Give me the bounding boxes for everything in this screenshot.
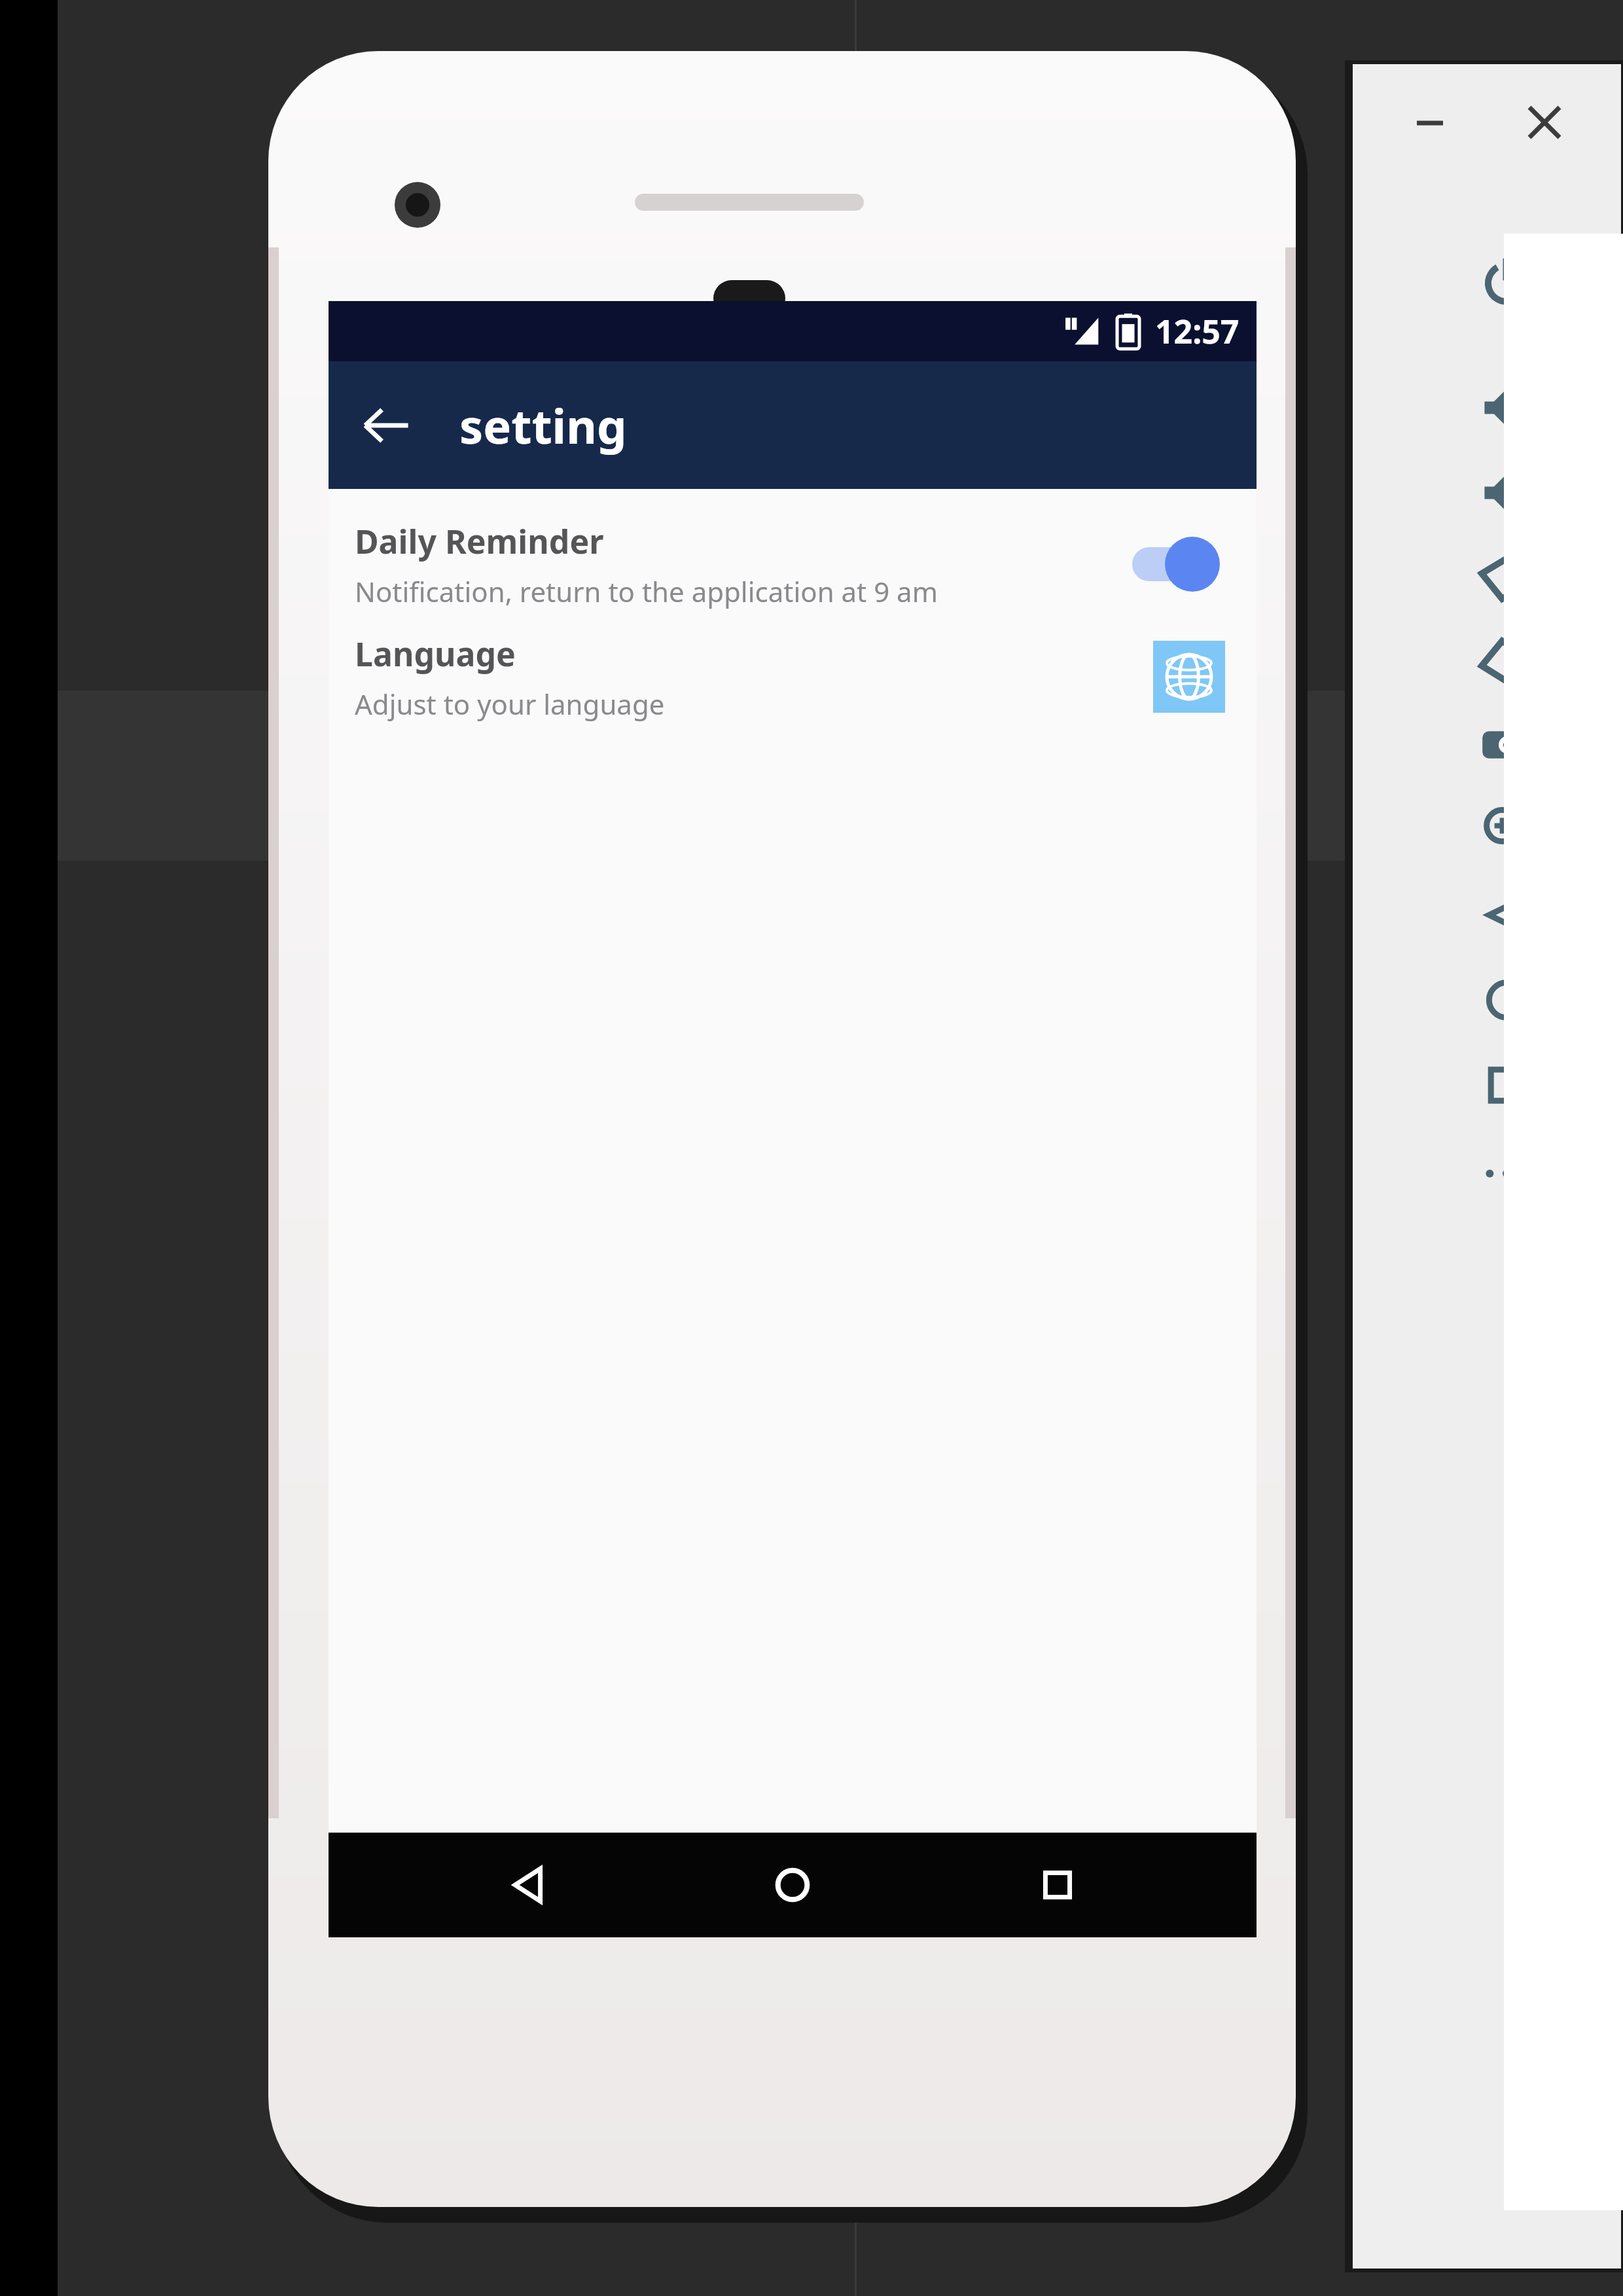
button[interactable]: Screenshot — [1464, 702, 1549, 787]
button[interactable]: Home — [727, 1833, 858, 1937]
button[interactable]: Overview — [1464, 1043, 1549, 1128]
button[interactable]: Language — [329, 628, 1257, 726]
button[interactable]: Volume down — [1464, 450, 1549, 535]
button[interactable]: Back — [463, 1833, 594, 1937]
button[interactable]: Rotate left — [1464, 535, 1549, 620]
button[interactable]: Home — [1464, 958, 1549, 1043]
button[interactable]: Daily reminder toggle — [1127, 528, 1225, 600]
button[interactable]: Back — [347, 386, 425, 465]
staticText: setting — [459, 393, 627, 457]
button[interactable]: Volume up — [1464, 365, 1549, 450]
button[interactable]: Language — [1153, 641, 1225, 713]
staticText: Adjust to your language — [355, 685, 665, 723]
button[interactable]: Rotate right — [1464, 620, 1549, 706]
button[interactable]: More — [1464, 1131, 1549, 1216]
staticText: Notification, return to the application … — [355, 573, 938, 610]
button[interactable]: Minimize — [1404, 97, 1456, 149]
button[interactable]: Daily Reminder — [329, 515, 1257, 613]
button[interactable]: Back — [1464, 872, 1549, 958]
staticText: Daily Reminder — [355, 519, 604, 564]
button[interactable]: Close — [1515, 93, 1574, 152]
button[interactable]: Zoom — [1464, 787, 1549, 872]
staticText: Language — [355, 632, 516, 676]
staticText: 12:57 — [1155, 309, 1240, 353]
button[interactable]: Power — [1464, 238, 1549, 323]
button[interactable]: Recents — [992, 1833, 1123, 1937]
